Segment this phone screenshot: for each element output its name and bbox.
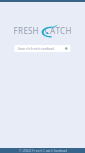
staticText: © 2024 Fresh Catch Seafood xyxy=(18,148,66,153)
staticText: CATCH xyxy=(44,26,71,36)
staticText: FRESH xyxy=(13,26,38,36)
button[interactable]: Search fresh seafood xyxy=(14,45,70,52)
staticText: Search fresh seafood xyxy=(17,46,53,51)
